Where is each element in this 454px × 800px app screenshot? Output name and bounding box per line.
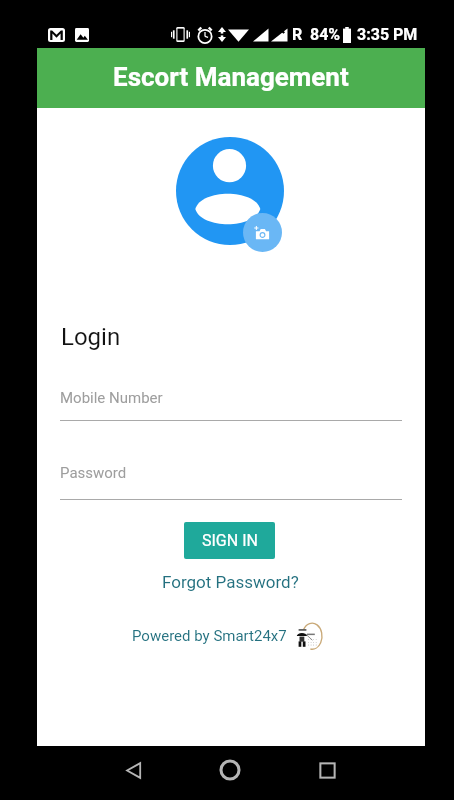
staticText: 84% bbox=[310, 25, 341, 44]
staticText: 3:35 PM bbox=[357, 25, 418, 44]
staticText: SIGN IN bbox=[202, 531, 258, 550]
staticText: Escort Management bbox=[113, 62, 349, 92]
button[interactable]: Home bbox=[210, 750, 250, 790]
button[interactable]: SIGN IN bbox=[184, 522, 275, 559]
staticText: R bbox=[292, 25, 303, 44]
staticText: Forgot Password? bbox=[162, 572, 299, 592]
staticText: Powered by Smart24x7 bbox=[132, 627, 287, 645]
button[interactable]: Mobile Number bbox=[60, 378, 402, 420]
staticText: Mobile Number bbox=[60, 389, 163, 407]
button[interactable]: Forgot Password? bbox=[154, 568, 307, 596]
button[interactable]: Recents bbox=[307, 750, 347, 790]
staticText: Password bbox=[60, 464, 127, 482]
button[interactable]: Change profile photo bbox=[243, 213, 282, 252]
button[interactable]: Escort Management bbox=[37, 48, 425, 108]
staticText: Login bbox=[61, 323, 121, 351]
button[interactable]: Back bbox=[114, 750, 154, 790]
button[interactable]: Password bbox=[60, 454, 402, 499]
